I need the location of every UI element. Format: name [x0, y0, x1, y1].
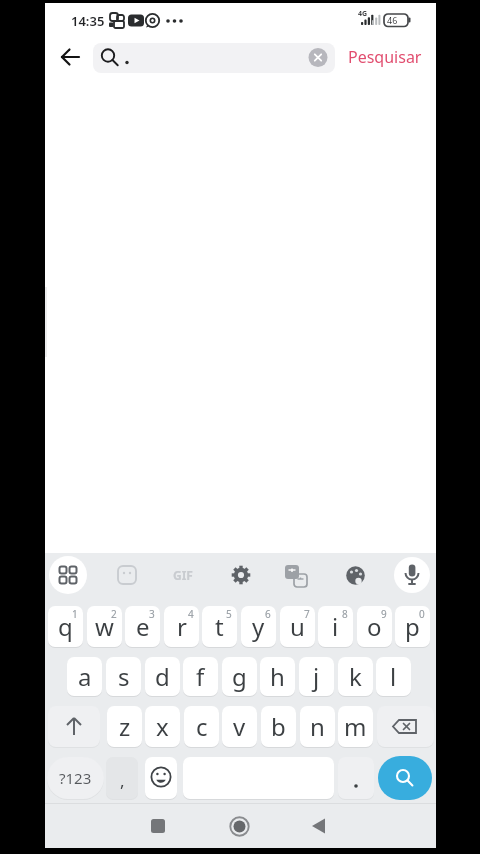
button[interactable]: h [260, 657, 295, 696]
staticText: b [271, 710, 286, 743]
button[interactable]: z [107, 706, 142, 747]
button[interactable]: GIF [170, 565, 196, 585]
staticText: g [232, 660, 247, 693]
button[interactable]: k [338, 657, 373, 696]
button[interactable] [305, 812, 333, 840]
staticText: 0 [419, 607, 425, 621]
button[interactable]: r [164, 606, 199, 647]
staticText: 1 [72, 607, 78, 621]
button[interactable] [145, 757, 177, 799]
staticText: 46 [387, 14, 398, 26]
button[interactable] [377, 706, 434, 747]
button[interactable]: v [222, 706, 257, 747]
button[interactable] [338, 757, 374, 799]
staticText: f [196, 660, 205, 693]
button[interactable]: l [376, 657, 411, 696]
staticText: 8 [342, 607, 348, 621]
button[interactable]: o [357, 606, 392, 647]
button[interactable]: d [145, 657, 180, 696]
staticText: m [344, 710, 367, 743]
button[interactable]: ?123 [47, 757, 104, 799]
staticText: 9 [381, 607, 387, 621]
staticText: o [367, 610, 382, 643]
button[interactable]: b [261, 706, 296, 747]
staticText: a [78, 660, 92, 693]
staticText: d [155, 660, 170, 693]
staticText: r [177, 610, 187, 643]
staticText: 7 [304, 607, 310, 621]
button[interactable]: p [395, 606, 430, 647]
staticText: 3 [149, 607, 155, 621]
staticText: e [136, 610, 150, 643]
button[interactable] [144, 812, 172, 840]
button[interactable]: f [183, 657, 218, 696]
button[interactable]: s [106, 657, 141, 696]
button[interactable]: a [67, 657, 102, 696]
staticText: z [119, 710, 131, 743]
button[interactable]: t [202, 606, 237, 647]
button[interactable]: e [125, 606, 160, 647]
staticText: j [313, 660, 320, 693]
staticText: 14:35 [71, 12, 105, 30]
staticText: Pesquisar [348, 46, 422, 68]
button[interactable] [117, 565, 137, 585]
button[interactable]: i [318, 606, 353, 647]
button[interactable]: q [48, 606, 83, 647]
staticText: 4G [358, 9, 368, 19]
button[interactable] [344, 564, 367, 587]
staticText: k [349, 660, 362, 693]
button[interactable]: , [106, 757, 138, 799]
button[interactable]: Pesquisar [348, 44, 422, 70]
staticText: ?123 [59, 768, 92, 788]
staticText: i [332, 610, 339, 643]
button[interactable]: j [299, 657, 334, 696]
staticText: GIF [173, 567, 193, 583]
staticText: q [58, 610, 73, 643]
button[interactable] [48, 706, 100, 747]
staticText: 5 [226, 607, 232, 621]
button[interactable] [378, 756, 432, 800]
staticText: h [270, 660, 285, 693]
staticText: c [196, 710, 208, 743]
staticText: 4 [188, 607, 194, 621]
staticText: 6 [265, 607, 271, 621]
button[interactable] [225, 812, 254, 841]
staticText: x [156, 710, 169, 743]
staticText: p [405, 610, 420, 643]
button[interactable]: c [184, 706, 219, 747]
staticText: , [120, 769, 125, 792]
staticText: 2 [111, 607, 117, 621]
button[interactable]: m [338, 706, 373, 747]
button[interactable]: g [222, 657, 257, 696]
staticText: u [290, 610, 305, 643]
staticText: s [118, 660, 130, 693]
staticText: t [215, 610, 224, 643]
button[interactable] [49, 556, 87, 594]
button[interactable] [229, 563, 253, 587]
button[interactable]: x [145, 706, 180, 747]
button[interactable]: y [241, 606, 276, 647]
staticText: w [95, 610, 114, 643]
button[interactable] [56, 43, 84, 71]
button[interactable] [284, 564, 308, 588]
staticText: n [310, 710, 325, 743]
staticText: l [390, 660, 397, 693]
staticText: v [233, 710, 246, 743]
button[interactable]: u [280, 606, 315, 647]
staticText: y [252, 610, 265, 643]
button[interactable]: n [300, 706, 335, 747]
button[interactable]: w [87, 606, 122, 647]
button[interactable] [93, 43, 335, 73]
button[interactable] [394, 557, 430, 593]
